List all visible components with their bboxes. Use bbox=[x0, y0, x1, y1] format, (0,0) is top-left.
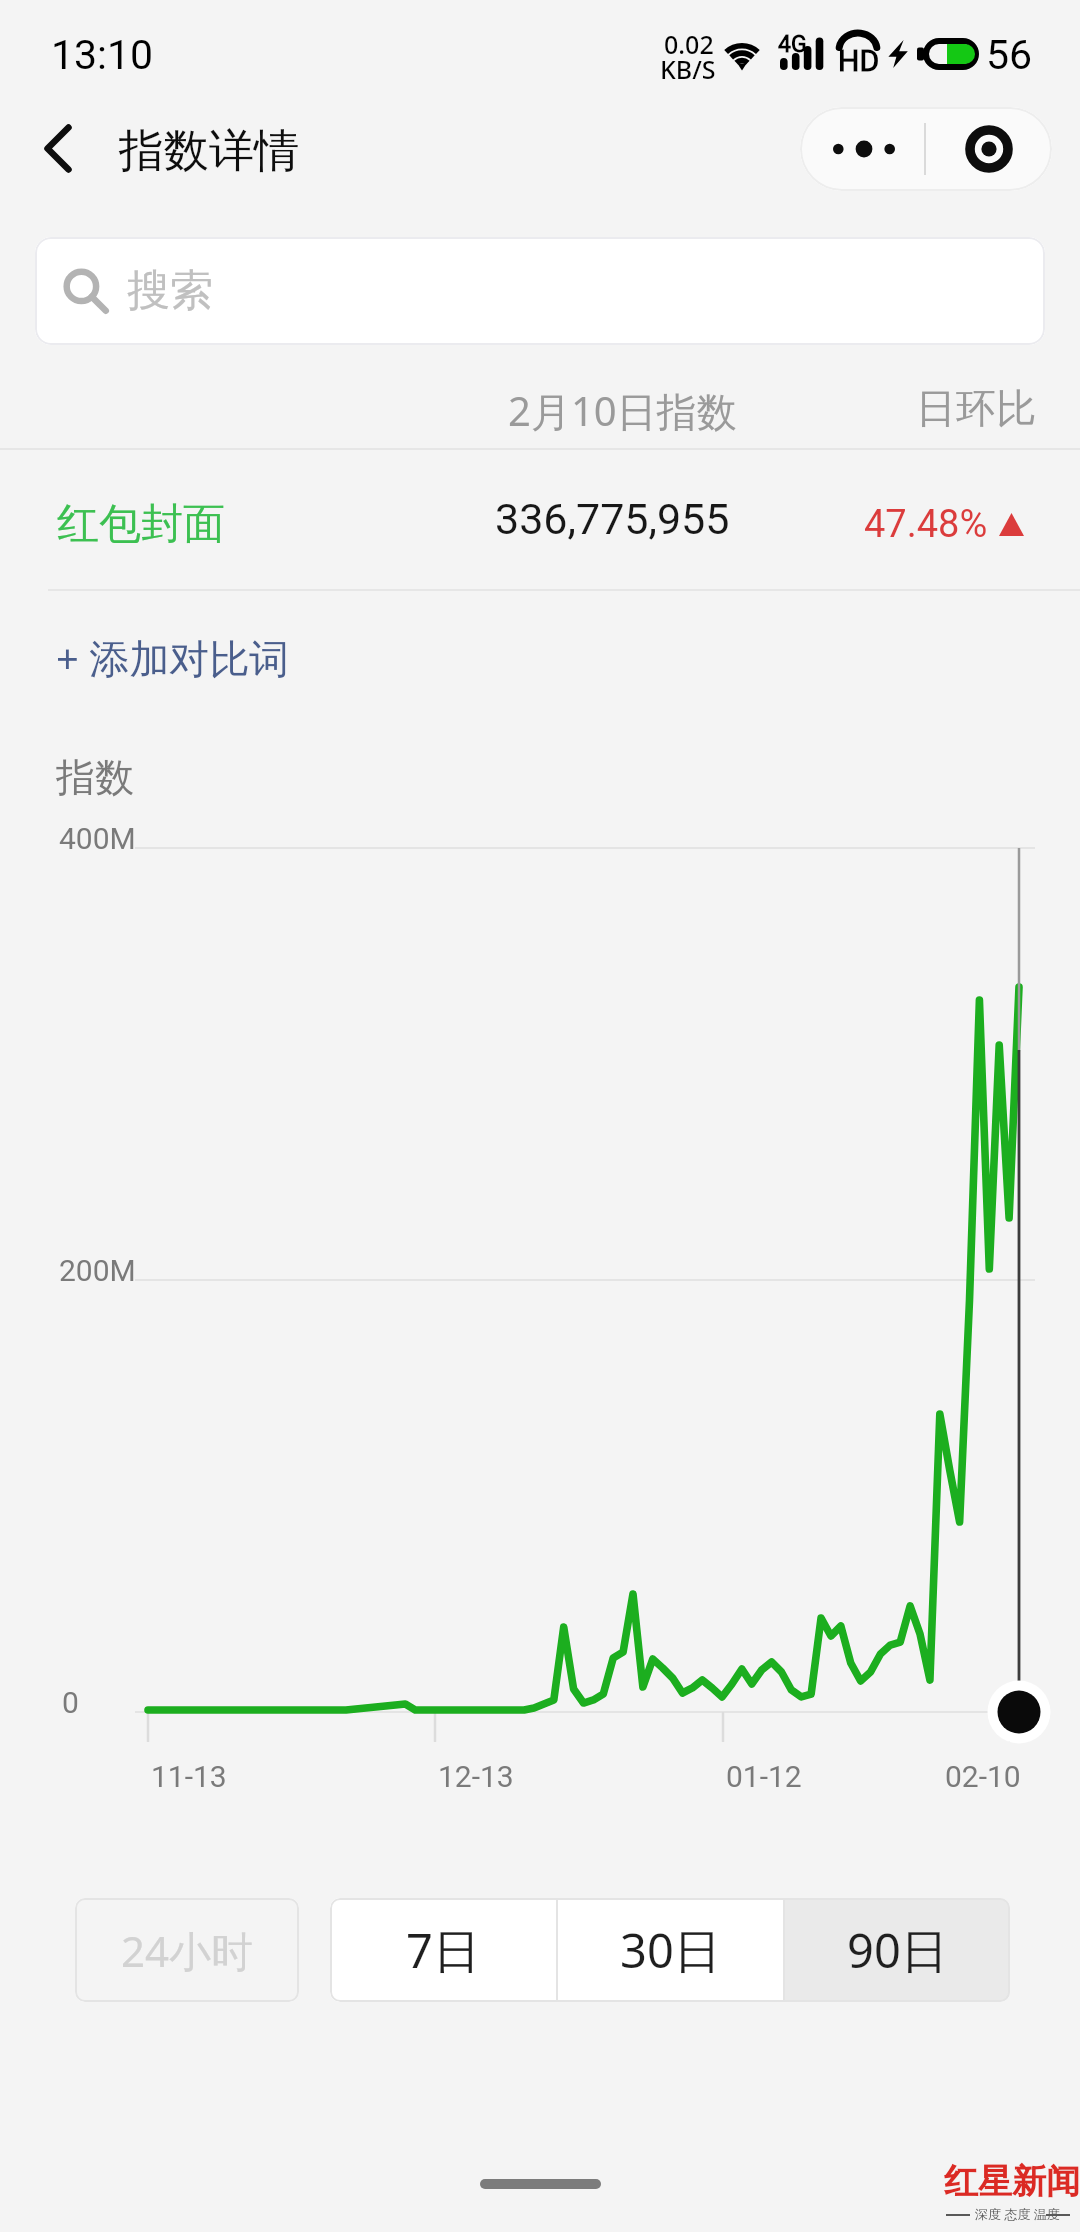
staticText: 01-12 bbox=[726, 1759, 802, 1794]
button[interactable]: 7日 bbox=[330, 1898, 556, 2002]
button[interactable]: Back bbox=[20, 108, 102, 190]
staticText: HD bbox=[838, 43, 880, 78]
staticText: 红星新闻 bbox=[944, 2160, 1080, 2203]
staticText: 90日 bbox=[847, 1918, 948, 1982]
staticText: 指数 bbox=[56, 753, 134, 802]
staticText: 336,775,955 bbox=[495, 494, 730, 544]
button[interactable]: Close mini program bbox=[926, 107, 1052, 191]
button[interactable]: 红包封面 bbox=[0, 450, 1080, 590]
staticText: 日环比 bbox=[916, 383, 1036, 433]
button[interactable]: 24小时 bbox=[75, 1898, 299, 2002]
staticText: 深度 态度 温度 bbox=[975, 2205, 1060, 2223]
staticText: 搜索 bbox=[127, 264, 213, 318]
staticText: 200M bbox=[59, 1253, 136, 1288]
staticText: 11-13 bbox=[151, 1759, 227, 1794]
staticText: 13:10 bbox=[51, 31, 154, 79]
button[interactable]: + 添加对比词 bbox=[40, 612, 340, 702]
staticText: 红包封面 bbox=[57, 498, 225, 551]
staticText: 2月10日指数 bbox=[508, 383, 737, 438]
button[interactable]: More options bbox=[800, 107, 926, 191]
staticText: 02-10 bbox=[945, 1759, 1021, 1794]
staticText: 30日 bbox=[620, 1918, 721, 1982]
staticText: 7日 bbox=[406, 1918, 480, 1982]
staticText: 400M bbox=[59, 821, 136, 856]
staticText: 0.02 bbox=[664, 27, 714, 61]
staticText: 4G bbox=[778, 31, 807, 58]
staticText: 24小时 bbox=[121, 1922, 254, 1979]
staticText: 47.48% bbox=[864, 502, 988, 547]
staticText: 0 bbox=[62, 1685, 79, 1720]
staticText: + 添加对比词 bbox=[56, 630, 290, 685]
button[interactable]: 90日 bbox=[785, 1898, 1010, 2002]
button[interactable]: 搜索 bbox=[35, 237, 1045, 345]
staticText: KB/S bbox=[660, 52, 716, 86]
staticText: 56 bbox=[986, 31, 1033, 79]
button[interactable]: 30日 bbox=[558, 1898, 783, 2002]
staticText: 12-13 bbox=[438, 1759, 514, 1794]
staticText: 指数详情 bbox=[119, 123, 299, 180]
